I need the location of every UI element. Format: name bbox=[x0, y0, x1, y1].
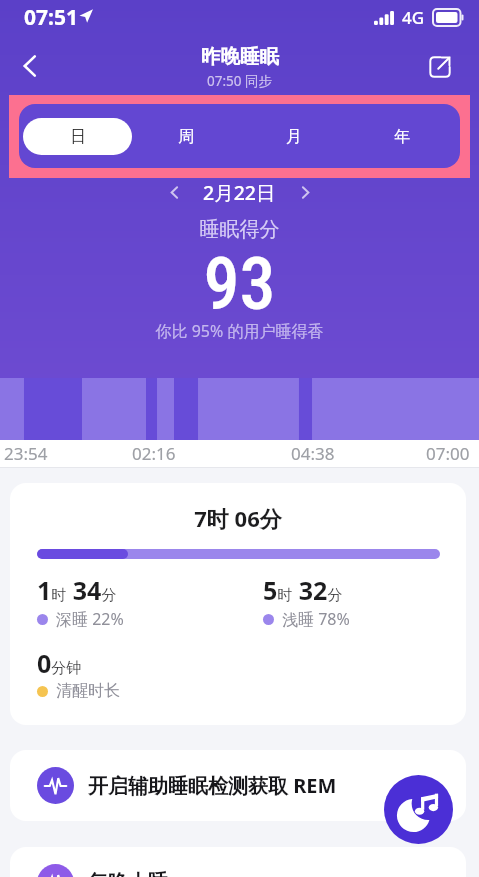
staticText: 深睡 22% bbox=[56, 608, 124, 630]
button[interactable]: 年 bbox=[348, 118, 456, 155]
button[interactable]: 每晚大睡 bbox=[10, 847, 466, 877]
button[interactable]: Previous day bbox=[159, 177, 189, 207]
staticText: 每晚大睡 bbox=[88, 870, 168, 877]
button[interactable]: 月 bbox=[240, 118, 348, 155]
staticText: 5时 32分 bbox=[263, 573, 343, 607]
button[interactable]: Share bbox=[418, 45, 462, 89]
staticText: 07:51 bbox=[24, 3, 78, 32]
staticText: 07:00 bbox=[426, 442, 470, 465]
staticText: 07:50 同步 bbox=[207, 72, 273, 90]
button[interactable]: Next day bbox=[290, 177, 320, 207]
staticText: 开启辅助睡眠检测获取 REM bbox=[88, 772, 337, 799]
button[interactable]: 7时 06分 bbox=[10, 483, 466, 725]
staticText: 1时 34分 bbox=[37, 573, 117, 607]
staticText: 7时 06分 bbox=[10, 503, 466, 533]
staticText: 02:16 bbox=[132, 442, 176, 465]
staticText: 月 bbox=[286, 127, 302, 147]
staticText: 93 bbox=[0, 242, 479, 326]
staticText: 周 bbox=[178, 127, 194, 147]
staticText: 0分钟 bbox=[37, 646, 82, 680]
staticText: 04:38 bbox=[291, 442, 335, 465]
staticText: 2月22日 bbox=[203, 179, 276, 206]
staticText: 4G bbox=[402, 6, 425, 29]
staticText: 你比 95% 的用户睡得香 bbox=[0, 320, 479, 342]
button[interactable]: 开启辅助睡眠检测获取 REM bbox=[10, 750, 466, 821]
button[interactable]: 周 bbox=[132, 118, 240, 155]
staticText: 年 bbox=[394, 127, 410, 147]
button[interactable]: Sleep music bbox=[384, 775, 453, 844]
staticText: 23:54 bbox=[4, 442, 48, 465]
staticText: 浅睡 78% bbox=[282, 608, 350, 630]
staticText: 日 bbox=[70, 127, 86, 147]
staticText: 昨晚睡眠 bbox=[201, 44, 279, 69]
button[interactable]: Back bbox=[8, 44, 52, 88]
staticText: 睡眠得分 bbox=[0, 217, 479, 242]
staticText: 清醒时长 bbox=[56, 681, 120, 701]
button[interactable]: 日 bbox=[23, 118, 132, 155]
